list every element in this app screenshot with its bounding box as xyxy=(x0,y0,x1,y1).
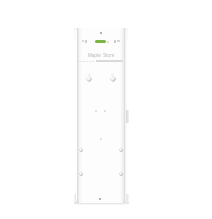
button[interactable] xyxy=(79,148,83,152)
button[interactable]: Side button xyxy=(124,110,129,123)
staticText: Maple Store xyxy=(76,52,126,58)
button[interactable] xyxy=(119,148,123,152)
button[interactable] xyxy=(110,76,116,82)
button[interactable] xyxy=(119,172,123,176)
button[interactable] xyxy=(86,76,92,82)
button[interactable] xyxy=(79,172,83,176)
